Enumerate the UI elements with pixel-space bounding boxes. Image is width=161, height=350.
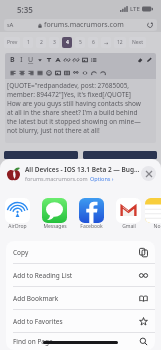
button[interactable] (83, 151, 157, 159)
staticText: ꜱA (7, 21, 14, 29)
staticText: 12 (117, 39, 123, 46)
staticText: 4 (66, 39, 69, 46)
staticText: 3 (53, 39, 56, 46)
staticText: Copy (13, 248, 139, 257)
button[interactable]: Format (135, 53, 144, 66)
button[interactable]: All Devices - IOS 13.1 Beta 2 — Bug Fi..… (5, 162, 156, 184)
button[interactable]: Notes (153, 198, 161, 231)
staticText: forums.macrumors.com (25, 175, 88, 182)
staticText: 6 (92, 39, 95, 46)
staticText: forums.macrumors.com (44, 20, 124, 30)
staticText: I (20, 55, 23, 65)
button[interactable]: Next (129, 37, 146, 48)
button[interactable]: AirDrop (5, 198, 30, 231)
button[interactable]: 3 (49, 37, 59, 48)
button[interactable]: Format (35, 53, 44, 66)
staticText: Add to Favorites (13, 317, 139, 326)
button[interactable]: Format (71, 66, 80, 79)
staticText: Find on Page (13, 337, 139, 346)
button[interactable]: Format (62, 66, 71, 79)
button[interactable]: U (26, 53, 35, 66)
staticText: 5 (79, 39, 82, 46)
button[interactable]: Format (80, 66, 89, 79)
staticText: Add Bookmark (13, 294, 139, 303)
staticText: at all in the share sheet? I'm a build b… (7, 108, 138, 117)
staticText: Next (132, 39, 143, 46)
button[interactable]: Format (80, 53, 89, 66)
staticText: AirDrop (8, 223, 27, 230)
button[interactable]: 5 (75, 37, 85, 48)
button[interactable]: Format (17, 66, 26, 79)
staticText: Facebook (80, 223, 103, 230)
button[interactable]: ꜱA (4, 19, 157, 31)
staticText: not blurry, just not there at all! (7, 126, 100, 135)
staticText: All Devices - IOS 13.1 Beta 2 — Bug Fi..… (25, 165, 141, 174)
button[interactable]: 2 (36, 37, 46, 48)
button[interactable]: Format (44, 66, 53, 79)
staticText: Gmail (122, 223, 136, 230)
button[interactable]: Close (141, 166, 156, 181)
button[interactable]: Add Bookmark (13, 287, 148, 309)
button[interactable]: Gmail (116, 198, 141, 231)
staticText: Messages (43, 223, 67, 230)
other: Reload (147, 22, 153, 28)
button[interactable]: Format (62, 53, 71, 66)
button[interactable]: Format (53, 66, 62, 79)
button[interactable]: Copy (13, 241, 148, 263)
button[interactable]: 12 (114, 37, 126, 48)
staticText: Add to Reading List (13, 271, 139, 280)
staticText: 1 (27, 39, 30, 46)
button[interactable]: Format (89, 66, 98, 79)
button[interactable]: Add to Reading List (13, 264, 148, 286)
button[interactable]: Prev (4, 37, 20, 48)
button[interactable]: Format (26, 66, 35, 79)
button[interactable]: B (8, 53, 17, 66)
staticText: 2 (40, 39, 43, 46)
button[interactable]: Format (44, 53, 53, 66)
button[interactable] (4, 151, 78, 159)
button[interactable]: Format (53, 53, 62, 66)
button[interactable]: Facebook (79, 198, 104, 231)
button[interactable]: Format (89, 53, 98, 66)
staticText: B (10, 55, 15, 65)
button[interactable]: Add to Favorites (13, 310, 148, 332)
staticText: 5:35 (17, 4, 33, 15)
staticText: member: 894472"]Yes, it's fixed[/QUOTE] (7, 90, 132, 99)
staticText: → (104, 40, 109, 46)
button[interactable]: I (17, 53, 26, 66)
staticText: U (28, 55, 34, 65)
staticText: the latest but it stopped showing on min… (7, 117, 141, 126)
staticText: Options › (90, 175, 114, 182)
button[interactable]: Format (144, 53, 153, 66)
staticText: Notes (153, 223, 161, 230)
button[interactable]: Messages (42, 198, 67, 231)
staticText: How are you guys still having contacts s… (7, 99, 141, 108)
button[interactable]: Format (98, 66, 107, 79)
button[interactable]: → (101, 37, 111, 48)
button[interactable]: 1 (23, 37, 33, 48)
button[interactable]: Find on Page (13, 333, 148, 350)
staticText: Prev (7, 39, 18, 46)
button[interactable]: Format (71, 53, 80, 66)
button[interactable]: 6 (88, 37, 98, 48)
button[interactable]: Format (35, 66, 44, 79)
button[interactable]: Format (8, 66, 17, 79)
staticText: [QUOTE="redpandadev, post: 27685005, (7, 81, 130, 90)
staticText: LTE (130, 5, 140, 13)
button[interactable]: 4 (62, 37, 72, 48)
